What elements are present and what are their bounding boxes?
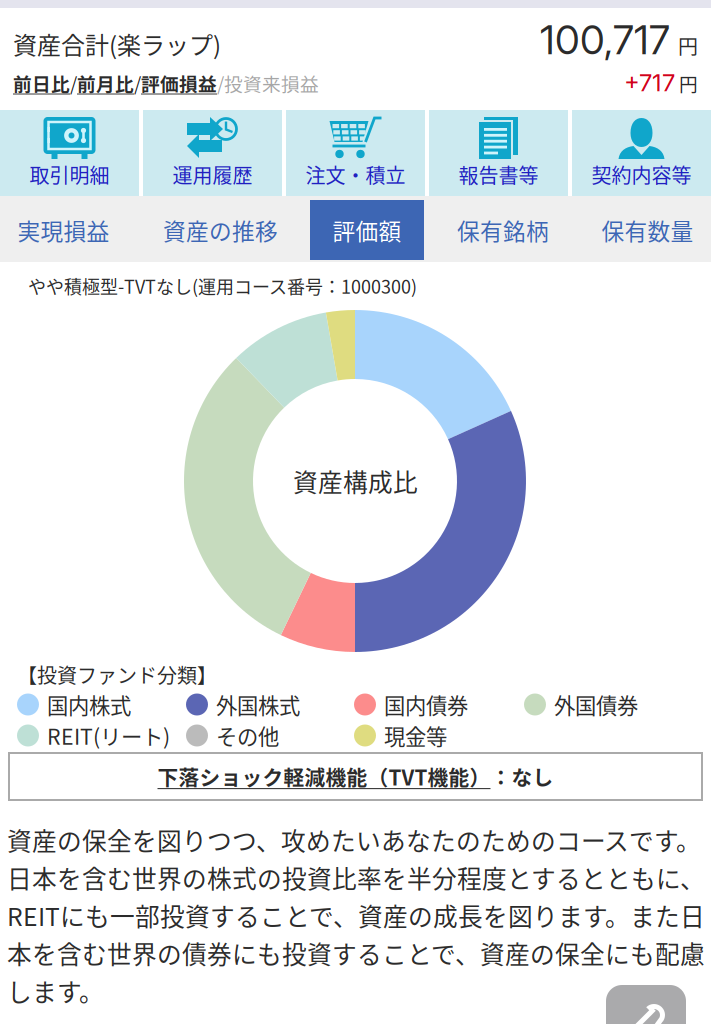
staticText: 資産合計(楽ラップ) — [13, 26, 221, 61]
staticText: 報告書等 — [458, 160, 538, 189]
staticText: 保有数量 — [601, 214, 693, 246]
staticText: REIT(リート) — [47, 720, 170, 751]
button[interactable]: 注文・積立 — [286, 110, 425, 196]
button[interactable]: 報告書等 — [429, 110, 568, 196]
staticText: 資産の推移 — [163, 214, 278, 246]
staticText: 下落ショック軽減機能（TVT機能） — [157, 761, 490, 791]
button[interactable]: 評価額 — [310, 200, 424, 260]
staticText: / — [70, 70, 77, 97]
button[interactable]: 資産の推移 — [133, 200, 308, 260]
staticText: 保有銘柄 — [457, 214, 549, 246]
staticText: / — [134, 70, 141, 97]
staticText: やや積極型-TVTなし(運用コース番号：1000300) — [28, 273, 417, 299]
staticText: 資産構成比 — [293, 463, 418, 499]
staticText: 前日比 — [13, 70, 70, 97]
staticText: 資産の保全を図りつつ、攻めたいあなたのためのコースです。日本を含む世界の株式の投… — [7, 822, 705, 1009]
button[interactable]: 実現損益 — [0, 200, 131, 260]
staticText: 円 — [675, 70, 698, 97]
staticText: 評価額 — [332, 214, 401, 246]
staticText: 取引明細 — [29, 160, 109, 189]
button[interactable]: 取引明細 — [0, 110, 139, 196]
staticText: 【投資ファンド分類】 — [17, 660, 217, 689]
button[interactable]: 契約内容等 — [572, 110, 711, 196]
staticText: 100,717 — [540, 16, 670, 64]
staticText: 外国株式 — [216, 689, 300, 720]
staticText: /投資来損益 — [217, 70, 319, 97]
staticText: その他 — [216, 720, 279, 751]
staticText: 外国債券 — [554, 689, 638, 720]
button[interactable]: 保有数量 — [582, 200, 711, 260]
staticText: 前月比 — [77, 70, 134, 97]
staticText: 実現損益 — [17, 214, 109, 246]
staticText: 運用履歴 — [172, 160, 252, 189]
staticText: 契約内容等 — [591, 160, 691, 189]
staticText: +717 — [624, 68, 675, 97]
staticText: 評価損益 — [141, 70, 217, 97]
button[interactable]: 保有銘柄 — [426, 200, 580, 260]
button[interactable]: 運用履歴 — [143, 110, 282, 196]
staticText: 国内株式 — [47, 689, 131, 720]
staticText: 注文・積立 — [305, 160, 405, 189]
staticText: 円 — [670, 31, 698, 60]
button[interactable]: Attach — [606, 985, 686, 1024]
staticText: 国内債券 — [384, 689, 468, 720]
staticText: ：なし — [490, 761, 553, 791]
staticText: 現金等 — [384, 720, 447, 751]
